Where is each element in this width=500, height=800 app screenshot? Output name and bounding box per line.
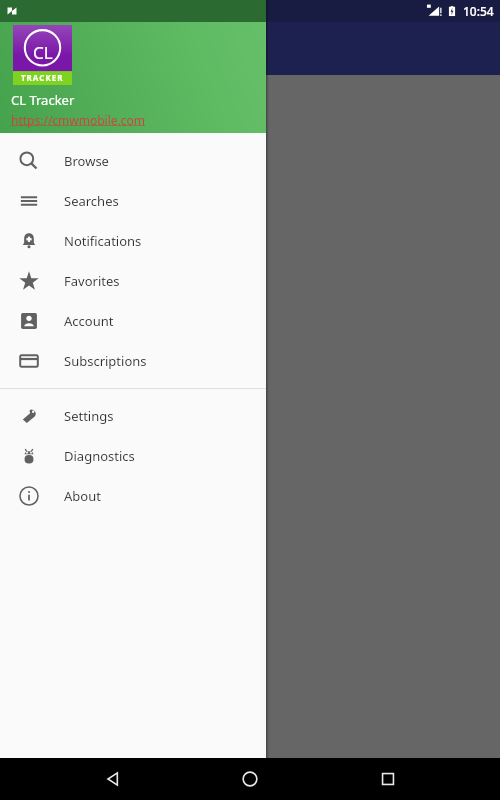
staticText: Favorites xyxy=(64,272,120,290)
button[interactable]: https://cmwmobile.com xyxy=(11,112,146,128)
staticText: Diagnostics xyxy=(64,447,135,465)
button[interactable]: Back xyxy=(88,758,138,800)
staticText: Notifications xyxy=(64,232,142,250)
staticText: Browse xyxy=(64,152,109,170)
staticText: Subscriptions xyxy=(64,352,147,370)
button[interactable]: Notifications xyxy=(0,221,266,261)
staticText: CL Tracker xyxy=(11,91,75,109)
staticText: CL xyxy=(33,41,53,64)
button[interactable]: About xyxy=(0,476,266,516)
button[interactable]: Searches xyxy=(0,181,266,221)
button[interactable]: Recents xyxy=(363,758,413,800)
staticText: 10:54 xyxy=(463,3,494,19)
staticText: Searches xyxy=(64,192,119,210)
staticText: Account xyxy=(64,312,114,330)
staticText: About xyxy=(64,487,101,505)
button[interactable]: Diagnostics xyxy=(0,436,266,476)
button[interactable]: Favorites xyxy=(0,261,266,301)
staticText: TRACKER xyxy=(21,72,64,83)
button[interactable]: Account xyxy=(0,301,266,341)
button[interactable]: Subscriptions xyxy=(0,341,266,381)
button[interactable]: Settings xyxy=(0,396,266,436)
button[interactable]: Home xyxy=(225,758,275,800)
staticText: Settings xyxy=(64,407,114,425)
button[interactable]: Browse xyxy=(0,141,266,181)
